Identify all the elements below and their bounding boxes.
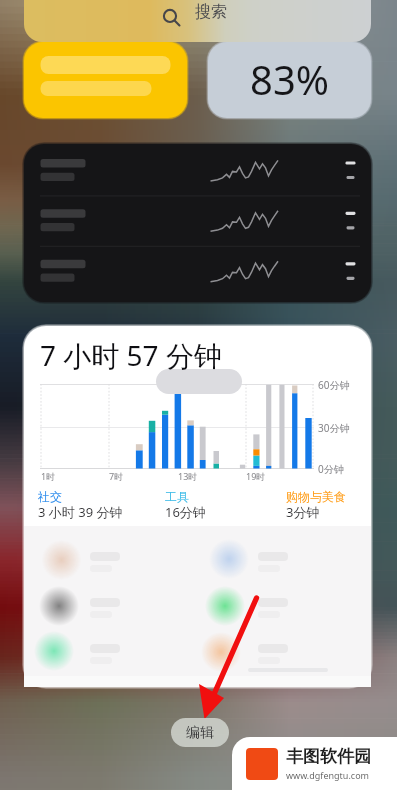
staticText: 83% (250, 52, 329, 106)
button[interactable]: 83% (208, 40, 371, 117)
staticText: 30分钟 (318, 421, 350, 435)
staticText: 1时 (41, 470, 56, 482)
staticText: 13时 (178, 470, 198, 482)
staticText: 7 小时 57 分钟 (40, 336, 222, 374)
staticText: www.dgfengtu.com (286, 769, 370, 781)
button[interactable]: 编辑 (171, 718, 229, 747)
staticText: 0分钟 (318, 462, 344, 476)
staticText: 编辑 (186, 724, 214, 742)
staticText: 工具 (165, 489, 189, 504)
staticText: 搜索 (195, 2, 227, 22)
staticText: 3分钟 (286, 503, 320, 521)
staticText: 60分钟 (318, 378, 350, 392)
staticText: 3 小时 39 分钟 (38, 503, 123, 521)
staticText: 7时 (109, 470, 124, 482)
staticText: 社交 (38, 489, 62, 504)
staticText: 16分钟 (165, 503, 206, 521)
button[interactable]: Search (24, 0, 371, 42)
staticText: 购物与美食 (286, 489, 346, 504)
staticText: 19时 (246, 470, 266, 482)
staticText: 丰图软件园 (286, 746, 371, 767)
